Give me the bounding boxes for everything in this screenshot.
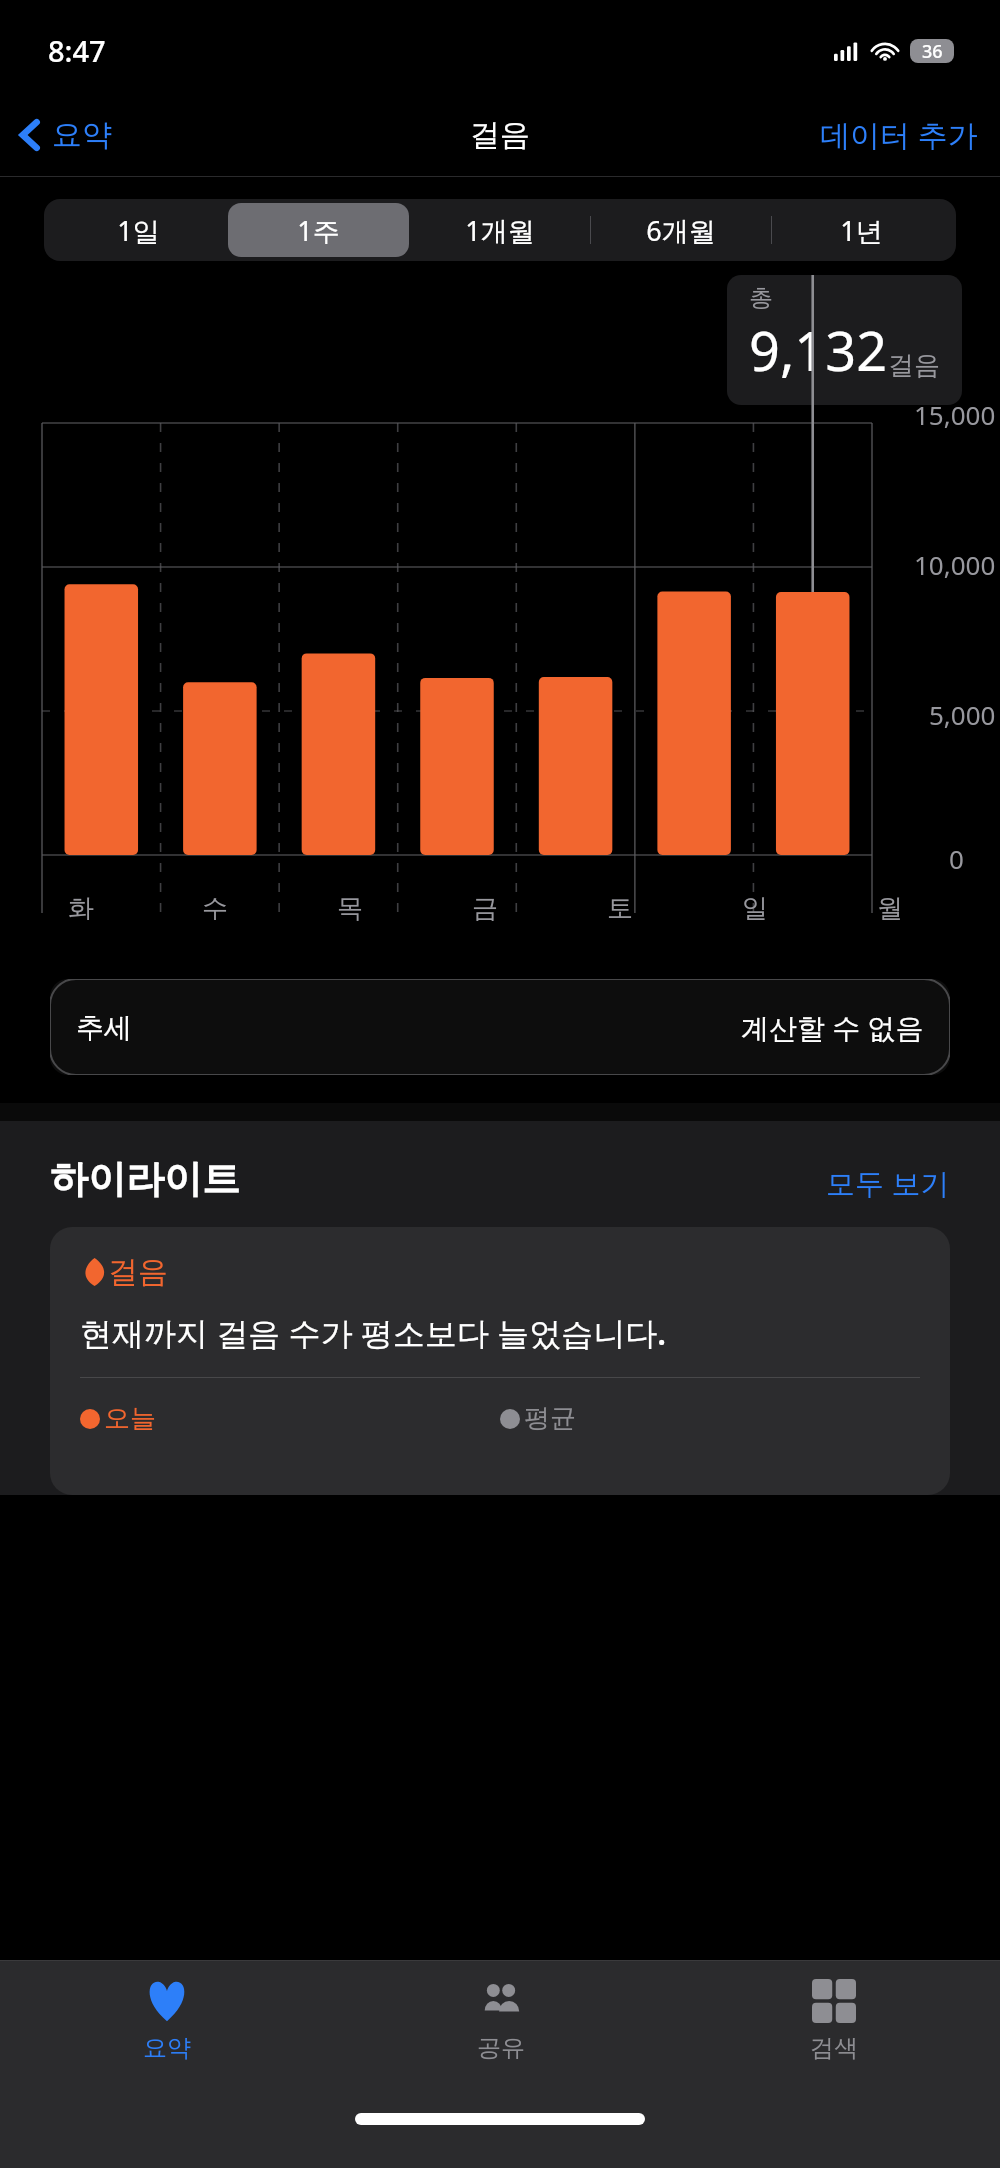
- staticText: 추세: [76, 1010, 132, 1045]
- button[interactable]: 걸음: [50, 1227, 950, 1495]
- staticText: 8:47: [48, 31, 106, 70]
- staticText: 1일: [117, 212, 160, 249]
- staticText: 수: [202, 892, 228, 925]
- staticText: 5,000: [929, 697, 996, 732]
- staticText: 걸음: [108, 1253, 168, 1291]
- button[interactable]: 데이터 추가: [820, 114, 978, 155]
- staticText: 36: [922, 39, 943, 63]
- staticText: 일: [742, 892, 768, 925]
- button[interactable]: 1년: [771, 203, 952, 257]
- staticText: 계산할 수 없음: [741, 1008, 924, 1046]
- staticText: 요약: [52, 116, 112, 154]
- button[interactable]: 추세: [50, 979, 950, 1075]
- staticText: 9,132: [749, 313, 888, 387]
- staticText: 하이라이트: [50, 1155, 240, 1203]
- staticText: 화: [68, 892, 94, 925]
- staticText: 0: [949, 841, 964, 876]
- staticText: 검색: [810, 2033, 858, 2063]
- staticText: 오늘: [104, 1402, 156, 1435]
- staticText: 월: [877, 892, 903, 925]
- button[interactable]: 검색: [667, 1961, 1000, 2091]
- staticText: 금: [472, 892, 498, 925]
- staticText: 6개월: [646, 212, 716, 249]
- staticText: 토: [607, 892, 633, 925]
- staticText: 걸음: [470, 116, 530, 154]
- button[interactable]: 요약: [0, 1961, 334, 2091]
- staticText: 목: [337, 892, 363, 925]
- staticText: 총: [749, 283, 773, 313]
- staticText: 2026. 1. 19.: [749, 387, 888, 395]
- staticText: 1개월: [465, 212, 535, 249]
- staticText: 10,000: [914, 547, 996, 582]
- staticText: 현재까지 걸음 수가 평소보다 늘었습니다.: [80, 1311, 667, 1355]
- button[interactable]: 1주: [228, 203, 409, 257]
- button[interactable]: 요약: [18, 116, 112, 154]
- button[interactable]: 모두 보기: [826, 1163, 950, 1203]
- staticText: 평균: [524, 1402, 576, 1435]
- staticText: 요약: [143, 2033, 191, 2063]
- staticText: 1주: [297, 212, 340, 249]
- staticText: 공유: [477, 2033, 525, 2063]
- staticText: 1년: [840, 212, 883, 249]
- staticText: 15,000: [914, 397, 996, 432]
- button[interactable]: 공유: [334, 1961, 667, 2091]
- button[interactable]: 6개월: [590, 203, 771, 257]
- button[interactable]: 1일: [48, 203, 228, 257]
- button[interactable]: 1개월: [409, 203, 590, 257]
- staticText: 걸음: [888, 349, 940, 382]
